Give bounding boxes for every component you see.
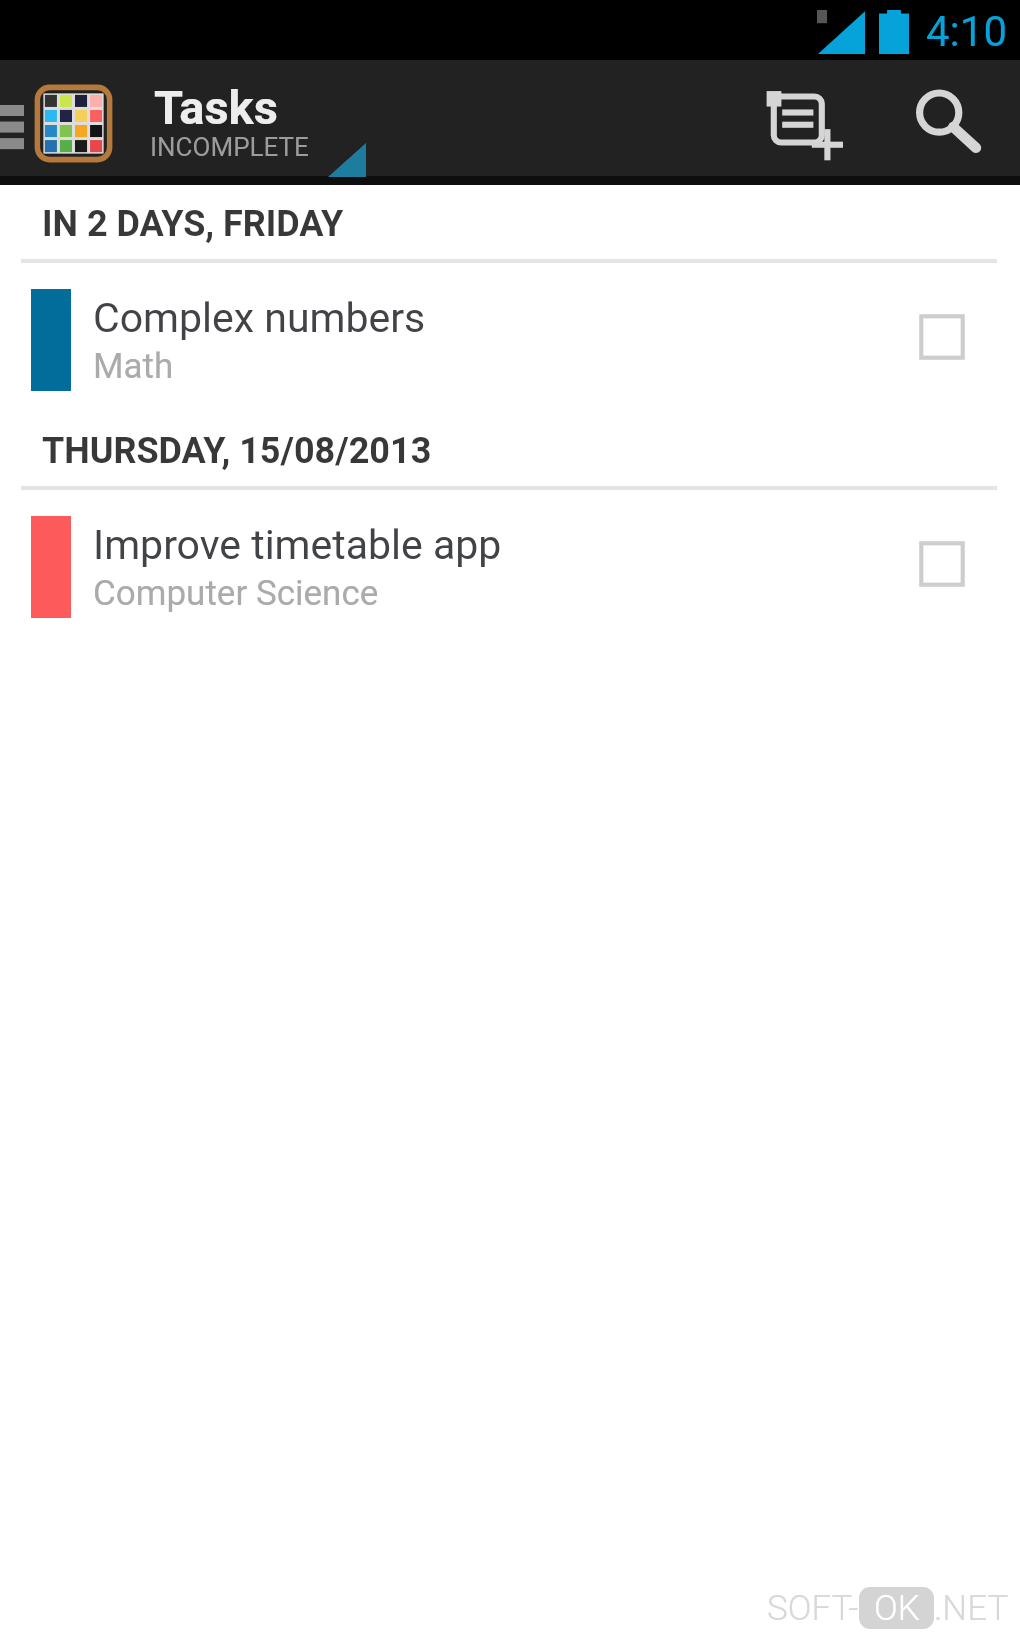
button[interactable]: Complex numbers [0,263,1020,417]
staticText: Computer Science [93,573,379,614]
staticText: Complex numbers [93,294,426,342]
button[interactable]: Mark Complex numbers complete [890,288,994,392]
staticText: OK [874,1588,920,1629]
button[interactable]: Mark Improve timetable app complete [890,515,994,619]
button[interactable]: Improve timetable app [0,490,1020,644]
staticText: 4:10 [926,7,1007,56]
staticText: INCOMPLETE [150,132,309,162]
button[interactable]: Search [880,61,1016,185]
staticText: SOFT- [767,1588,859,1629]
staticText: Improve timetable app [93,521,502,569]
staticText: Math [93,346,174,387]
button[interactable]: Add task [744,61,880,185]
staticText: .NET [934,1588,1009,1629]
button[interactable]: Open navigation drawer [0,61,114,185]
staticText: THURSDAY, 15/08/2013 [42,430,432,472]
button[interactable]: Tasks, INCOMPLETE filter [154,61,484,185]
staticText: Tasks [154,80,278,135]
staticText: IN 2 DAYS, FRIDAY [42,203,344,245]
